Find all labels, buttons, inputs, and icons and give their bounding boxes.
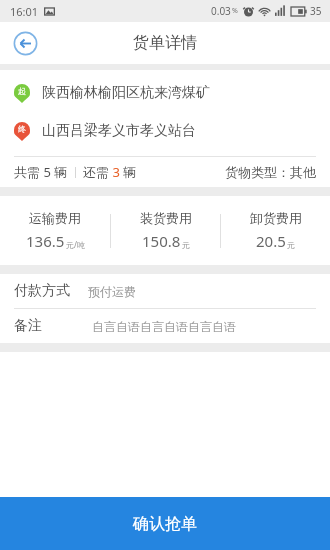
staticText: 150.8 xyxy=(142,231,181,251)
staticText: 元 xyxy=(182,240,190,250)
button[interactable]: Back xyxy=(8,26,42,60)
staticText: 元/吨 xyxy=(66,239,85,250)
staticText: 装货费用 xyxy=(140,210,192,226)
staticText: 35 xyxy=(310,4,322,18)
staticText: 预付运费 xyxy=(88,284,136,299)
staticText: 付款方式 xyxy=(14,282,70,300)
staticText: 运输费用 xyxy=(29,210,81,226)
staticText: 备注 xyxy=(14,317,42,335)
staticText: 卸货费用 xyxy=(250,210,302,226)
staticText: 起 xyxy=(18,86,26,96)
staticText: 自言自语自言自语自言自语 xyxy=(92,319,236,334)
staticText: 货单详情 xyxy=(133,33,197,53)
staticText: 136.5 xyxy=(26,231,65,251)
staticText: 还需 3 辆 xyxy=(83,163,137,181)
staticText: 货物类型：其他 xyxy=(225,164,316,180)
staticText: 确认抢单 xyxy=(133,514,197,534)
staticText: 山西吕梁孝义市孝义站台 xyxy=(42,122,196,140)
staticText: 20.5 xyxy=(256,231,286,251)
staticText: 元 xyxy=(287,240,295,250)
button[interactable]: 确认抢单 xyxy=(0,497,330,550)
staticText: 0.03 xyxy=(211,4,231,18)
staticText: 16:01 xyxy=(10,4,39,19)
staticText: 共需 5 辆 xyxy=(14,163,68,181)
staticText: % xyxy=(232,6,238,16)
staticText: 陕西榆林榆阳区杭来湾煤矿 xyxy=(42,84,210,102)
staticText: 终 xyxy=(18,124,26,134)
